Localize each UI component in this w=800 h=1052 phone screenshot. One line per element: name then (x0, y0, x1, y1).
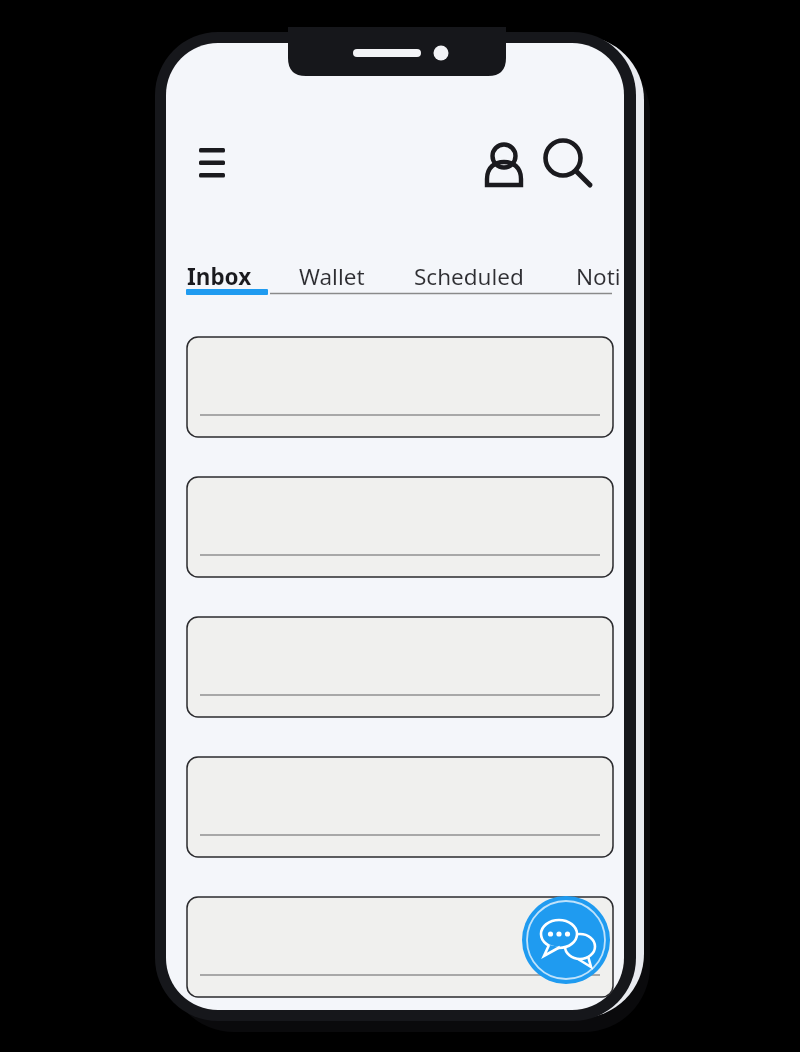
button[interactable]: Search (540, 134, 594, 188)
button[interactable] (187, 477, 613, 577)
button[interactable] (187, 757, 613, 857)
button[interactable]: Account (482, 134, 528, 188)
button[interactable] (186, 248, 270, 298)
button[interactable] (574, 248, 620, 298)
button[interactable] (187, 337, 613, 437)
button[interactable] (412, 248, 542, 298)
button[interactable]: New message (522, 896, 610, 984)
button[interactable] (187, 617, 613, 717)
button[interactable] (187, 897, 613, 997)
button[interactable] (296, 248, 388, 298)
button[interactable]: Menu (193, 141, 233, 183)
